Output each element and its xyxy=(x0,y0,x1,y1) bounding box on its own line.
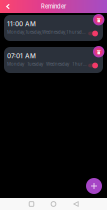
staticText: Monday Tuesday Wednesday Thursday xyxy=(7,61,87,67)
staticText: Reminder xyxy=(41,3,66,10)
button[interactable]: Back xyxy=(69,198,83,210)
button[interactable]: Home xyxy=(46,198,60,210)
staticText: Monday,Tuesday,Wednesday,Thursday,Friday… xyxy=(7,29,87,35)
button[interactable]: Recent apps xyxy=(24,198,38,210)
button[interactable]: Back xyxy=(1,0,14,13)
staticText: 11:00 AM xyxy=(7,20,36,28)
button[interactable]: Add reminder xyxy=(86,178,102,194)
button[interactable]: Delete reminder xyxy=(93,14,104,25)
button[interactable]: 11:00 AM xyxy=(4,15,103,41)
button[interactable]: Toggle reminder on xyxy=(88,60,104,71)
staticText: 07:01 AM xyxy=(7,52,36,60)
button[interactable]: 07:01 AM xyxy=(4,47,103,73)
button[interactable]: Delete reminder xyxy=(93,46,104,57)
button[interactable]: Toggle reminder on xyxy=(88,28,104,39)
